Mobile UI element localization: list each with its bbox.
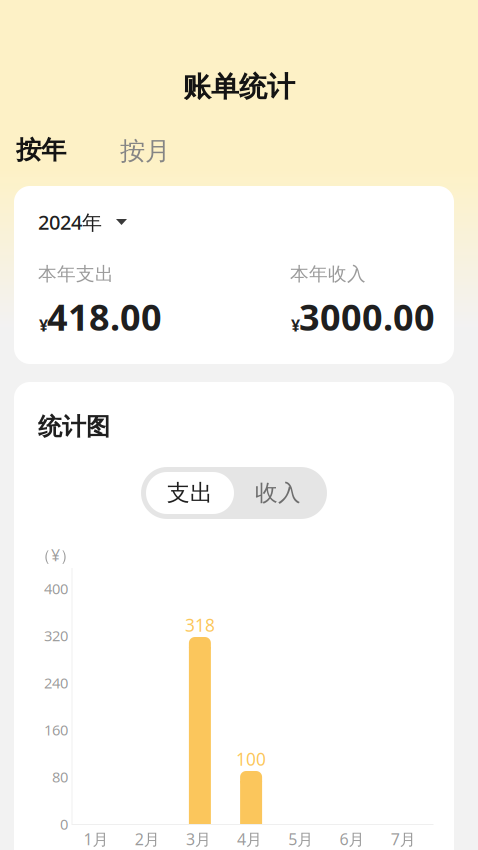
- staticText: 418.00: [47, 293, 162, 341]
- staticText: ¥: [291, 315, 300, 336]
- staticText: ¥: [39, 315, 48, 336]
- staticText: 7月: [391, 828, 416, 850]
- staticText: 按月: [120, 135, 170, 166]
- staticText: 2024年: [38, 209, 102, 235]
- staticText: 3000.00: [299, 293, 435, 341]
- staticText: 80: [52, 767, 68, 787]
- staticText: 2月: [135, 828, 160, 850]
- staticText: （¥）: [35, 544, 76, 566]
- staticText: 240: [44, 673, 68, 692]
- staticText: 400: [44, 579, 68, 598]
- staticText: 本年支出: [38, 262, 114, 285]
- staticText: 100: [236, 747, 266, 770]
- staticText: 1月: [83, 828, 108, 850]
- button[interactable]: 收入: [234, 472, 322, 514]
- staticText: 0: [60, 814, 68, 834]
- button[interactable]: 2024年: [38, 207, 127, 237]
- staticText: 160: [44, 720, 68, 740]
- button[interactable]: 按年: [16, 133, 90, 167]
- staticText: 4月: [237, 828, 262, 850]
- button[interactable]: 按月: [120, 134, 190, 168]
- staticText: 5月: [288, 828, 313, 850]
- staticText: 收入: [255, 479, 301, 507]
- staticText: 318: [185, 613, 215, 636]
- staticText: 320: [44, 626, 68, 645]
- staticText: 6月: [339, 828, 364, 850]
- staticText: 3月: [186, 828, 211, 850]
- staticText: 统计图: [38, 412, 110, 441]
- staticText: 按年: [16, 134, 66, 165]
- staticText: 账单统计: [183, 70, 295, 104]
- staticText: 支出: [167, 479, 213, 507]
- button[interactable]: 支出: [146, 472, 234, 514]
- staticText: 本年收入: [290, 262, 366, 285]
